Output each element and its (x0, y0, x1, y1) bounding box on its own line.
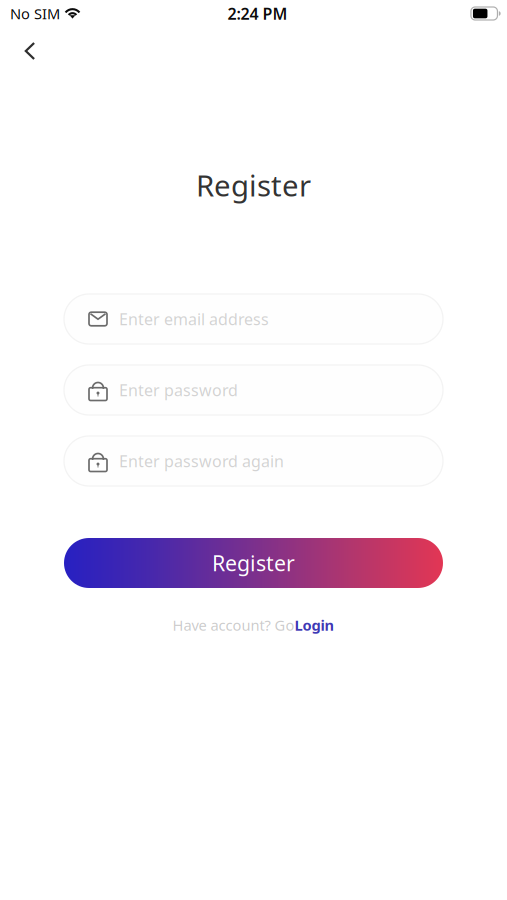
staticText: No SIM (10, 4, 60, 23)
staticText: Login (294, 615, 334, 635)
staticText: 2:24 PM (227, 3, 287, 24)
staticText: Enter password (119, 379, 238, 401)
staticText: Have account? Go (172, 615, 294, 635)
staticText: Enter email address (119, 308, 269, 330)
button[interactable]: Have account? Go (172, 615, 334, 635)
button[interactable]: Back (8, 28, 52, 74)
staticText: Register (212, 549, 295, 577)
button[interactable]: Register (64, 538, 443, 588)
staticText: Register (196, 165, 311, 204)
staticText: Enter password again (119, 450, 284, 472)
